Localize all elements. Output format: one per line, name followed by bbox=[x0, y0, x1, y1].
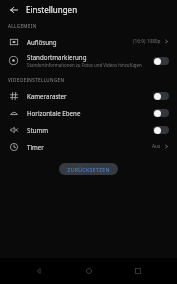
button[interactable]: Startbildschirm bbox=[78, 260, 100, 282]
button[interactable]: Kameraraster bbox=[0, 87, 177, 104]
button[interactable]: Horizontale Ebene bbox=[153, 109, 169, 117]
staticText: Stumm bbox=[27, 126, 49, 134]
button[interactable]: Standortmarkierung bbox=[0, 50, 177, 71]
staticText: Timer bbox=[27, 143, 44, 151]
staticText: ALLGEMEIN bbox=[8, 23, 37, 29]
button[interactable]: Übersicht bbox=[127, 260, 149, 282]
staticText: Auflösung bbox=[27, 38, 57, 46]
button[interactable]: Auflösung bbox=[0, 33, 177, 50]
staticText: Kameraraster bbox=[27, 92, 67, 100]
button[interactable]: Stumm bbox=[0, 121, 177, 138]
button[interactable]: Timer bbox=[0, 138, 177, 155]
button[interactable]: Standortmarkierung bbox=[153, 57, 169, 65]
staticText: Einstellungen bbox=[26, 4, 78, 15]
staticText: ZURÜCKSETZEN bbox=[67, 166, 110, 173]
button[interactable]: Zurück bbox=[5, 1, 22, 18]
staticText: Standortinformationen zu Fotos und Video… bbox=[27, 62, 142, 68]
button[interactable]: Zurück bbox=[28, 260, 50, 282]
button[interactable]: Kameraraster bbox=[153, 92, 169, 100]
button[interactable]: ZURÜCKSETZEN bbox=[59, 163, 118, 175]
staticText: (16:9) 1080p bbox=[133, 38, 161, 45]
staticText: Standortmarkierung bbox=[27, 53, 87, 61]
staticText: Horizontale Ebene bbox=[27, 109, 81, 117]
staticText: Aus bbox=[152, 143, 161, 150]
button[interactable]: Stumm bbox=[153, 126, 169, 134]
staticText: VIDEOEINSTELLUNGEN bbox=[8, 77, 65, 83]
button[interactable]: Horizontale Ebene bbox=[0, 104, 177, 121]
